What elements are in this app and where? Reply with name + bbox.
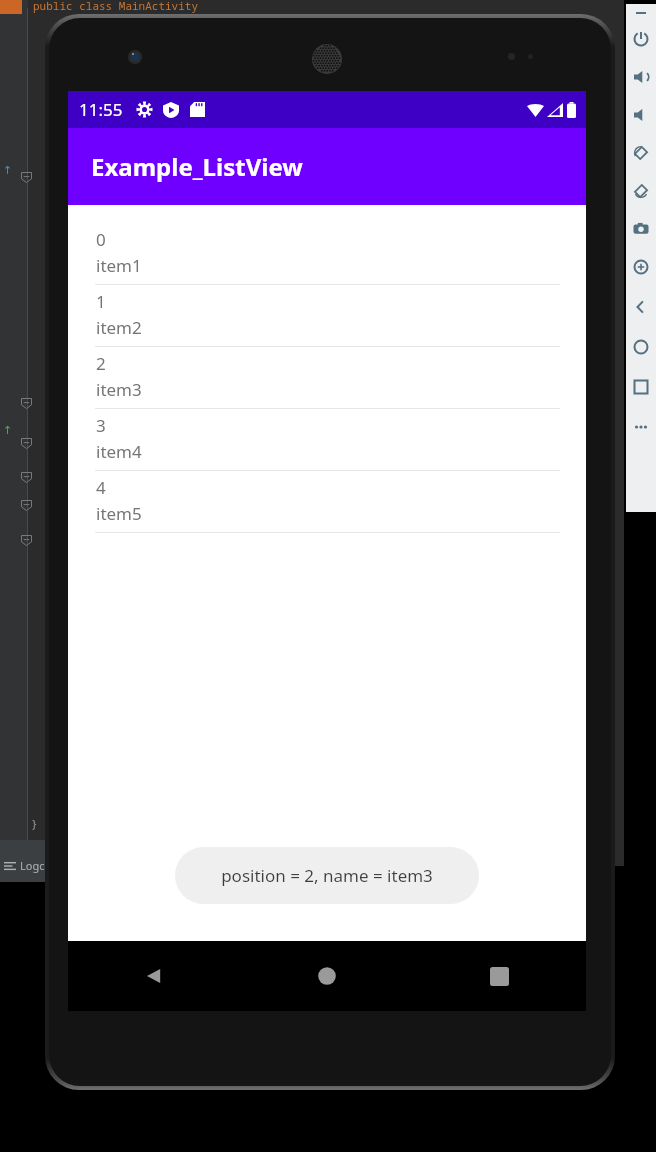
staticText: 1 (96, 290, 106, 313)
button[interactable]: Rotate right (630, 180, 652, 202)
button[interactable]: Volume up (630, 66, 652, 88)
button[interactable]: 3 (68, 414, 586, 476)
button[interactable]: Home (240, 941, 413, 1011)
button[interactable]: Overview (630, 376, 652, 398)
staticText: Example_ListView (91, 150, 303, 183)
staticText: ↑ (3, 164, 13, 177)
staticText: item4 (96, 440, 142, 463)
button[interactable]: 2 (68, 352, 586, 414)
button[interactable]: More (630, 416, 652, 438)
staticText: public class MainActivity (33, 0, 198, 13)
button[interactable]: Home (630, 336, 652, 358)
button[interactable]: 0 (68, 228, 586, 290)
staticText: 3 (96, 414, 106, 437)
button[interactable]: 1 (68, 290, 586, 352)
staticText: ↑ (3, 424, 13, 437)
button[interactable]: Screenshot (630, 218, 652, 240)
staticText: Logcat (20, 858, 55, 873)
staticText: item2 (96, 316, 142, 339)
staticText: position = 2, name = item3 (221, 864, 433, 887)
button[interactable]: Back (68, 941, 240, 1011)
button[interactable]: Back (630, 296, 652, 318)
staticText: 0 (96, 228, 106, 251)
button[interactable]: Rotate left (630, 142, 652, 164)
staticText: 4 (96, 476, 106, 499)
button[interactable]: Overview (413, 941, 586, 1011)
staticText: item5 (96, 502, 142, 525)
button[interactable]: Volume down (630, 104, 652, 126)
button[interactable]: 4 (68, 476, 586, 538)
button[interactable]: Power (630, 28, 652, 50)
staticText: 11:55 (79, 98, 123, 121)
button[interactable]: Zoom (630, 256, 652, 278)
staticText: } (31, 816, 38, 831)
staticText: item3 (96, 378, 142, 401)
staticText: 2 (96, 352, 106, 375)
staticText: item1 (96, 254, 142, 277)
